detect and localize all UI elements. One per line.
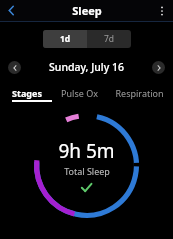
button[interactable]: Previous day bbox=[8, 61, 21, 74]
staticText: Sleep bbox=[72, 3, 102, 18]
button[interactable]: Back bbox=[0, 0, 22, 21]
button[interactable]: Next day bbox=[152, 61, 165, 74]
button[interactable]: Stages bbox=[0, 87, 53, 107]
staticText: Sunday, July 16 bbox=[21, 60, 152, 74]
button[interactable]: Respiration bbox=[106, 87, 173, 107]
staticText: 1d bbox=[60, 33, 71, 45]
staticText: Pulse Ox bbox=[61, 87, 98, 99]
staticText: Stages bbox=[12, 87, 42, 99]
staticText: 7d bbox=[104, 33, 115, 45]
button[interactable]: 7d bbox=[87, 30, 131, 48]
button[interactable]: Pulse Ox bbox=[53, 87, 106, 107]
staticText: Total Sleep bbox=[64, 165, 110, 177]
staticText: Respiration bbox=[115, 87, 164, 99]
button[interactable]: More options bbox=[151, 0, 173, 21]
staticText: 9h 5m bbox=[58, 138, 115, 164]
button[interactable]: 1d bbox=[43, 30, 87, 48]
